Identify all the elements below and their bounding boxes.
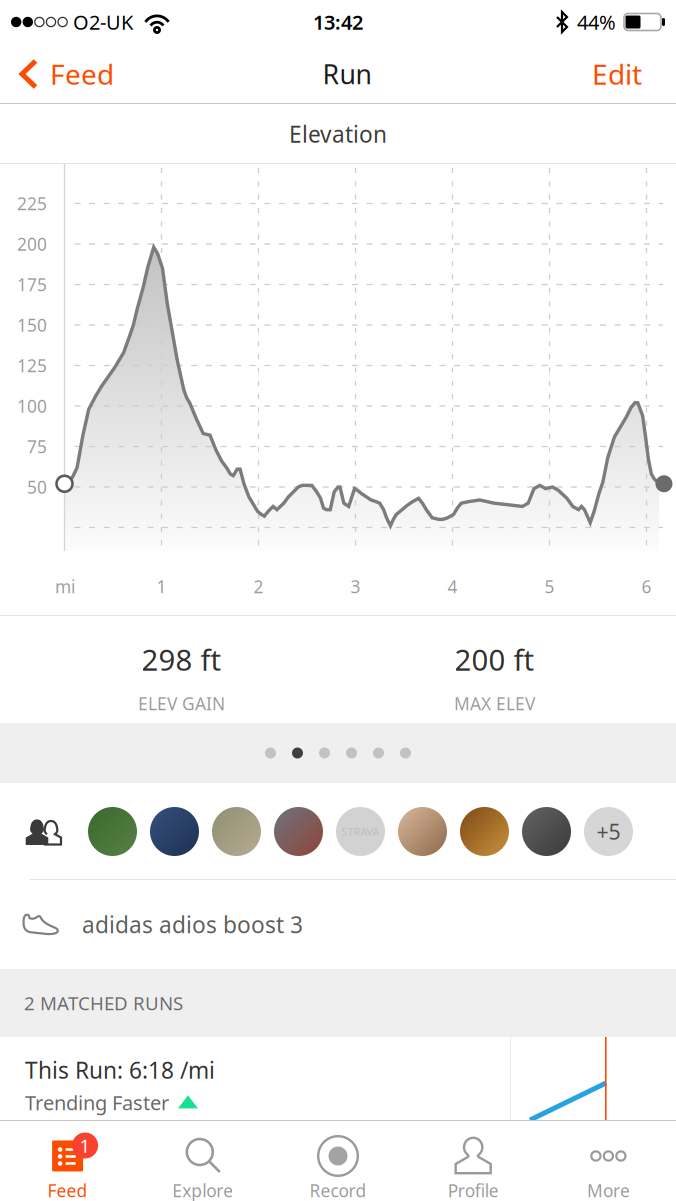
- staticText: This Run: 6:18 /mi: [25, 1055, 215, 1085]
- staticText: 175: [17, 273, 47, 296]
- staticText: More: [587, 1179, 630, 1201]
- staticText: Explore: [172, 1179, 233, 1201]
- button[interactable]: Feed: [0, 44, 126, 104]
- staticText: Feed: [50, 55, 114, 93]
- staticText: Run: [322, 56, 371, 92]
- staticText: Trending Faster: [25, 1089, 169, 1116]
- button[interactable]: adidas adios boost 3: [0, 880, 676, 969]
- button[interactable]: 1: [0, 1121, 135, 1201]
- staticText: 200 ft: [454, 640, 534, 679]
- staticText: Feed: [48, 1179, 88, 1201]
- staticText: 4: [447, 575, 457, 598]
- staticText: Edit: [592, 55, 642, 93]
- staticText: MAX ELEV: [454, 692, 535, 715]
- staticText: O2-UK: [73, 9, 133, 35]
- staticText: 5: [544, 575, 554, 598]
- staticText: 1: [80, 1133, 91, 1158]
- staticText: 13:42: [313, 9, 363, 35]
- button[interactable]: STRAVA: [0, 783, 676, 880]
- staticText: ELEV GAIN: [138, 692, 225, 715]
- staticText: Profile: [448, 1179, 499, 1201]
- staticText: 50: [27, 475, 47, 498]
- staticText: Record: [309, 1179, 366, 1201]
- staticText: 3: [350, 575, 360, 598]
- staticText: 6: [641, 575, 651, 598]
- staticText: Elevation: [289, 119, 387, 149]
- staticText: 125: [17, 354, 47, 377]
- staticText: 1: [156, 575, 166, 598]
- staticText: 150: [17, 313, 47, 336]
- button[interactable]: More: [541, 1121, 676, 1201]
- staticText: STRAVA: [341, 824, 379, 839]
- button[interactable]: Profile: [406, 1121, 541, 1201]
- button[interactable]: Explore: [135, 1121, 270, 1201]
- staticText: 2 MATCHED RUNS: [24, 991, 183, 1015]
- button[interactable]: Edit: [568, 44, 676, 104]
- staticText: +5: [596, 817, 620, 846]
- staticText: 200: [17, 232, 47, 255]
- staticText: 44%: [577, 9, 616, 35]
- staticText: 225: [17, 192, 47, 215]
- staticText: 100: [17, 394, 47, 417]
- staticText: 75: [27, 435, 47, 458]
- button[interactable]: This Run: 6:18 /mi: [0, 1037, 676, 1120]
- staticText: adidas adios boost 3: [82, 909, 303, 939]
- staticText: 298 ft: [141, 640, 221, 679]
- staticText: 2: [253, 575, 263, 598]
- button[interactable]: Record: [270, 1121, 406, 1201]
- staticText: mi: [55, 575, 75, 598]
